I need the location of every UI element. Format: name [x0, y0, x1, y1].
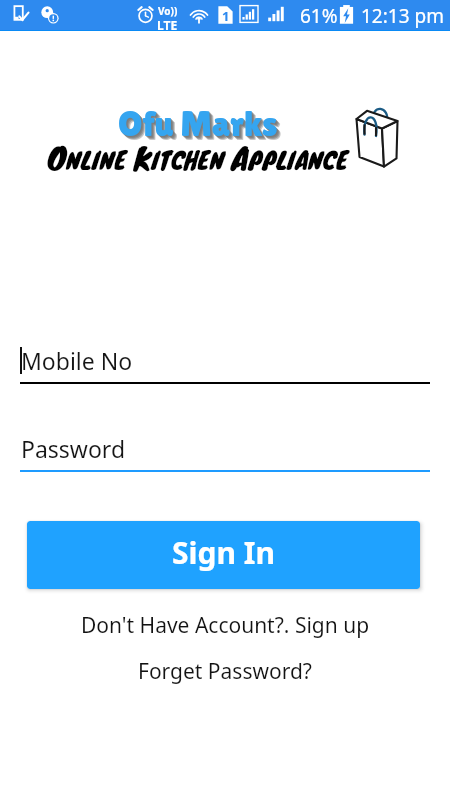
staticText: 12:13 pm	[361, 3, 444, 29]
staticText: ONLINE KITCHEN APPLIANCE	[47, 134, 349, 181]
staticText: 61%	[300, 3, 338, 29]
staticText: Forget Password?	[138, 657, 312, 686]
staticText: Password	[21, 433, 126, 464]
other: Storage warning	[40, 5, 59, 24]
button[interactable]: Don't Have Account?. Sign up	[71, 606, 380, 645]
other: Saved to device	[11, 5, 30, 24]
staticText: 1	[222, 7, 230, 25]
button[interactable]: Forget Password?	[128, 652, 322, 691]
button[interactable]: Password	[20, 425, 430, 472]
staticText: Don't Have Account?. Sign up	[81, 611, 370, 640]
staticText: Ofu Marks	[122, 108, 282, 148]
staticText: Mobile No	[21, 345, 133, 376]
staticText: Sign In	[172, 532, 275, 573]
staticText: Ofu Marks	[118, 104, 278, 144]
staticText: LTE	[157, 17, 178, 33]
button[interactable]: Sign In	[27, 521, 420, 589]
staticText: Vo))	[158, 4, 178, 18]
staticText: Ofu Marks	[120, 106, 280, 146]
staticText: Ofu Marks	[121, 107, 281, 147]
button[interactable]: Mobile No	[20, 337, 430, 384]
staticText: Ofu Marks	[119, 105, 279, 145]
